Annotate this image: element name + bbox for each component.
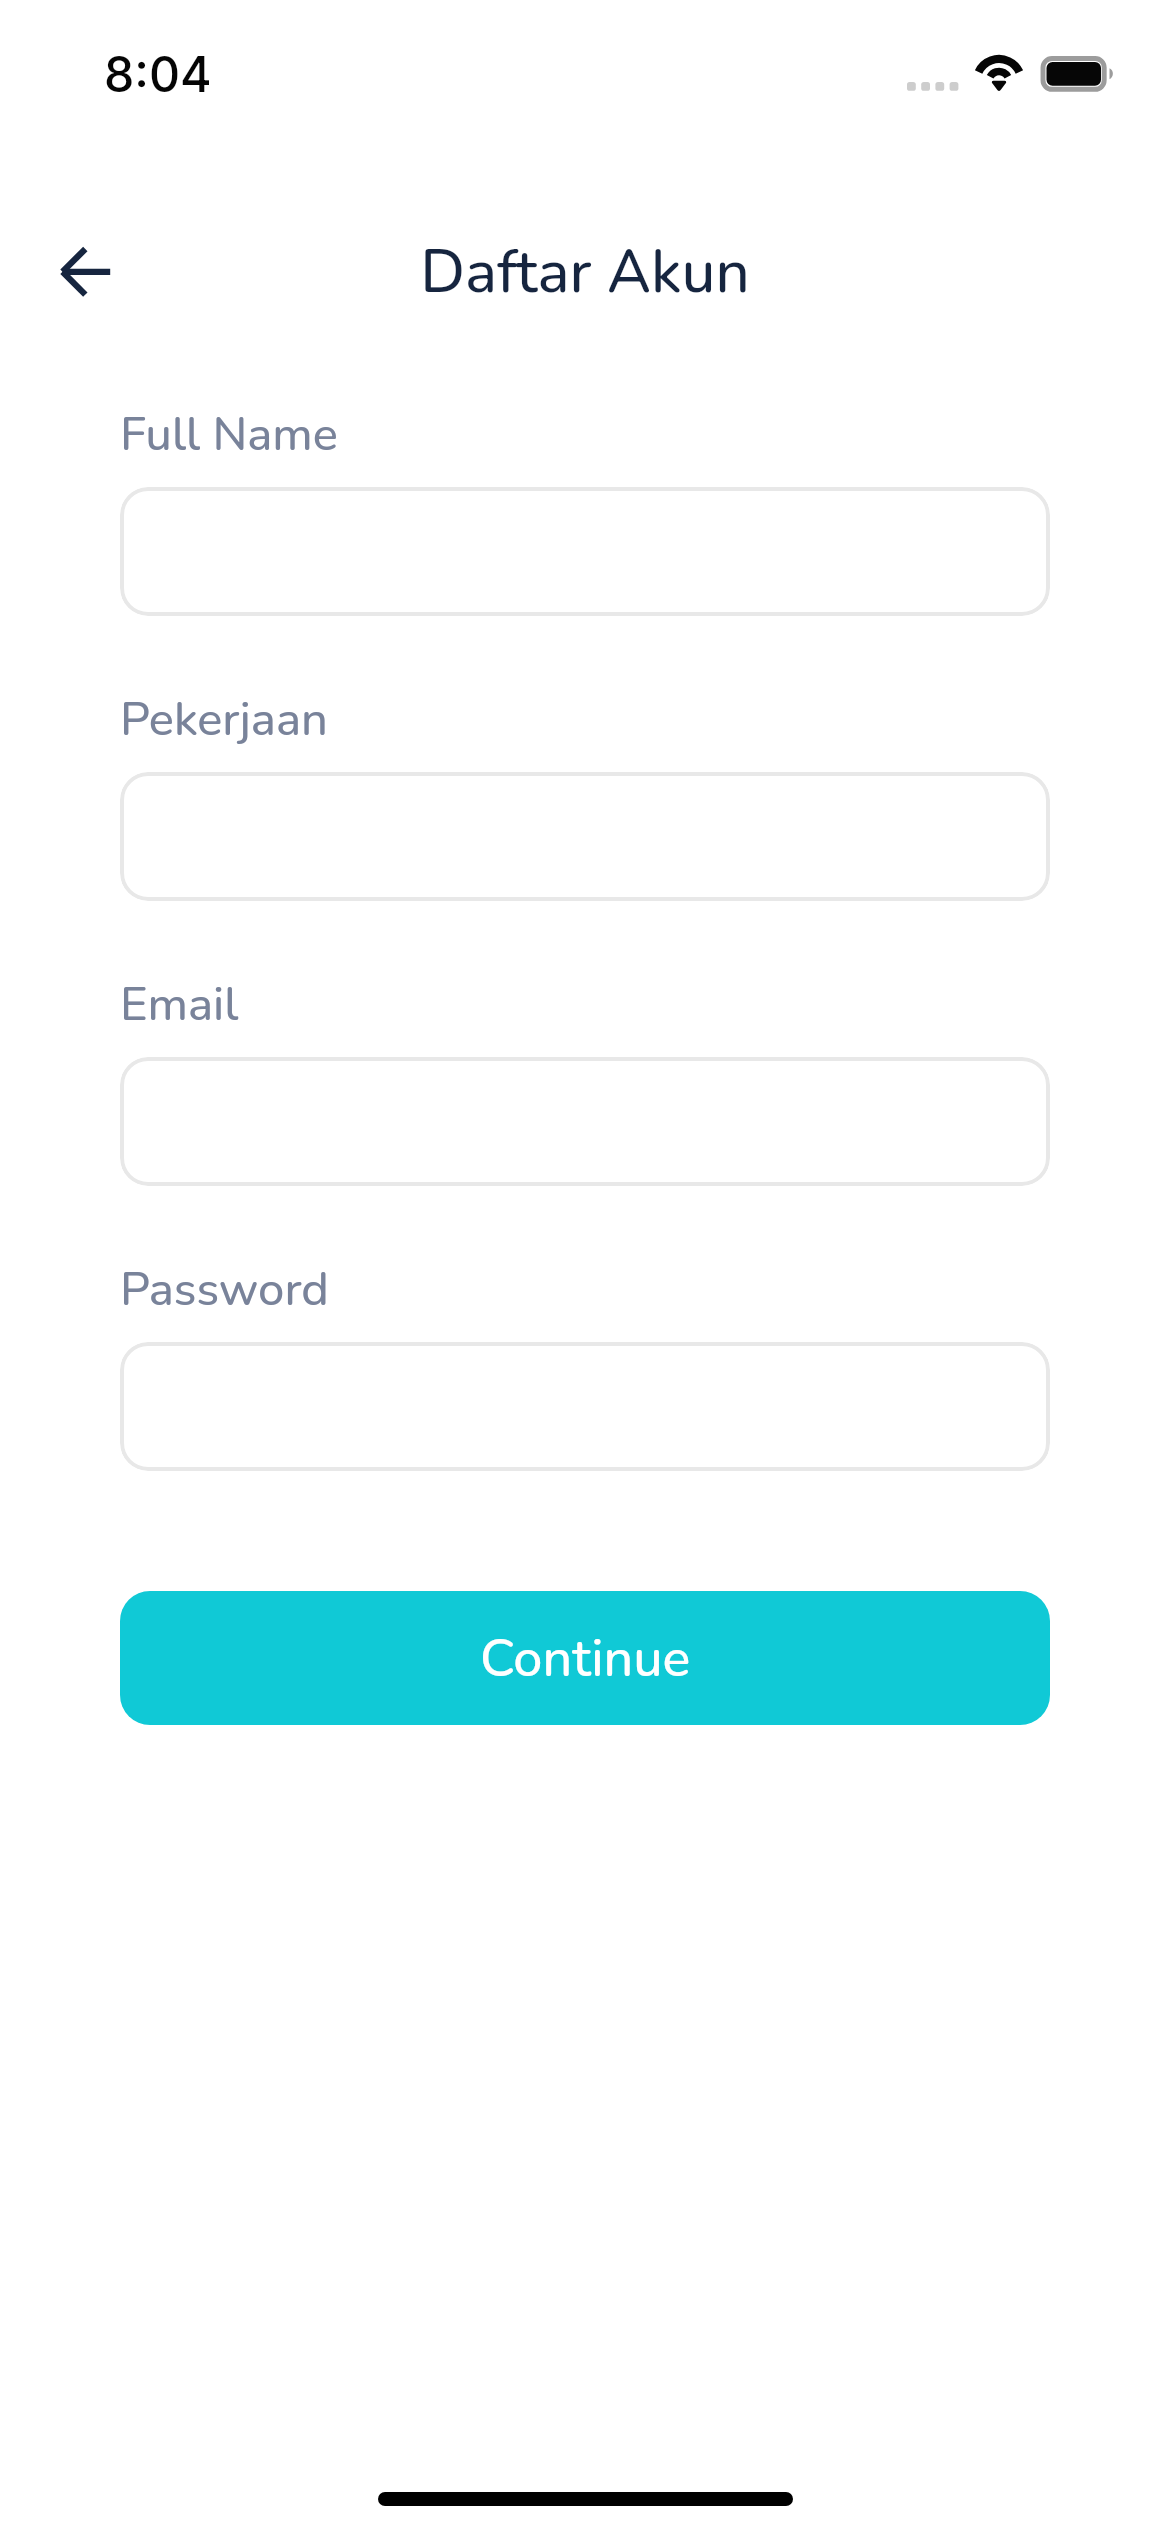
staticText: Daftar Akun — [0, 231, 1170, 313]
button[interactable] — [120, 487, 1050, 616]
staticText: 8:04 — [104, 45, 212, 103]
button[interactable] — [120, 1342, 1050, 1471]
staticText: Password — [120, 1257, 329, 1321]
button[interactable]: Continue — [120, 1591, 1050, 1725]
staticText: Pekerjaan — [120, 687, 328, 751]
button[interactable] — [120, 1057, 1050, 1186]
staticText: Continue — [480, 1623, 691, 1694]
button[interactable]: Back — [40, 228, 132, 320]
staticText: Full Name — [120, 402, 338, 466]
staticText: Email — [120, 972, 239, 1036]
button[interactable] — [120, 772, 1050, 901]
